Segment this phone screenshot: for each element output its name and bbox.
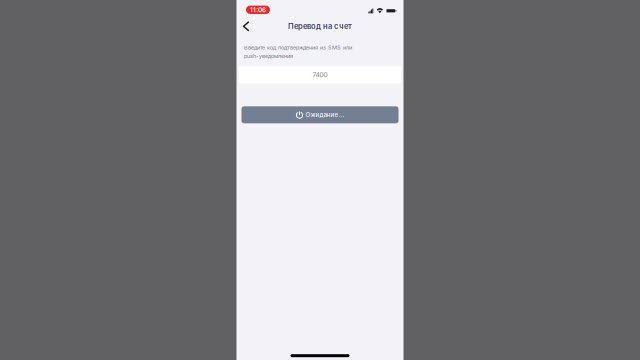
staticText: 7400 [312,71,327,79]
button[interactable]: Ожидание... [241,106,398,123]
staticText: 11:06 [250,6,266,14]
staticText: Введите код подтверждения из SMS или [244,44,352,51]
button[interactable]: 7400 [238,66,401,83]
staticText: push-уведомления [244,53,293,59]
staticText: Перевод на счет [288,22,352,31]
button[interactable]: Back [238,18,254,34]
staticText: Ожидание... [305,111,344,118]
